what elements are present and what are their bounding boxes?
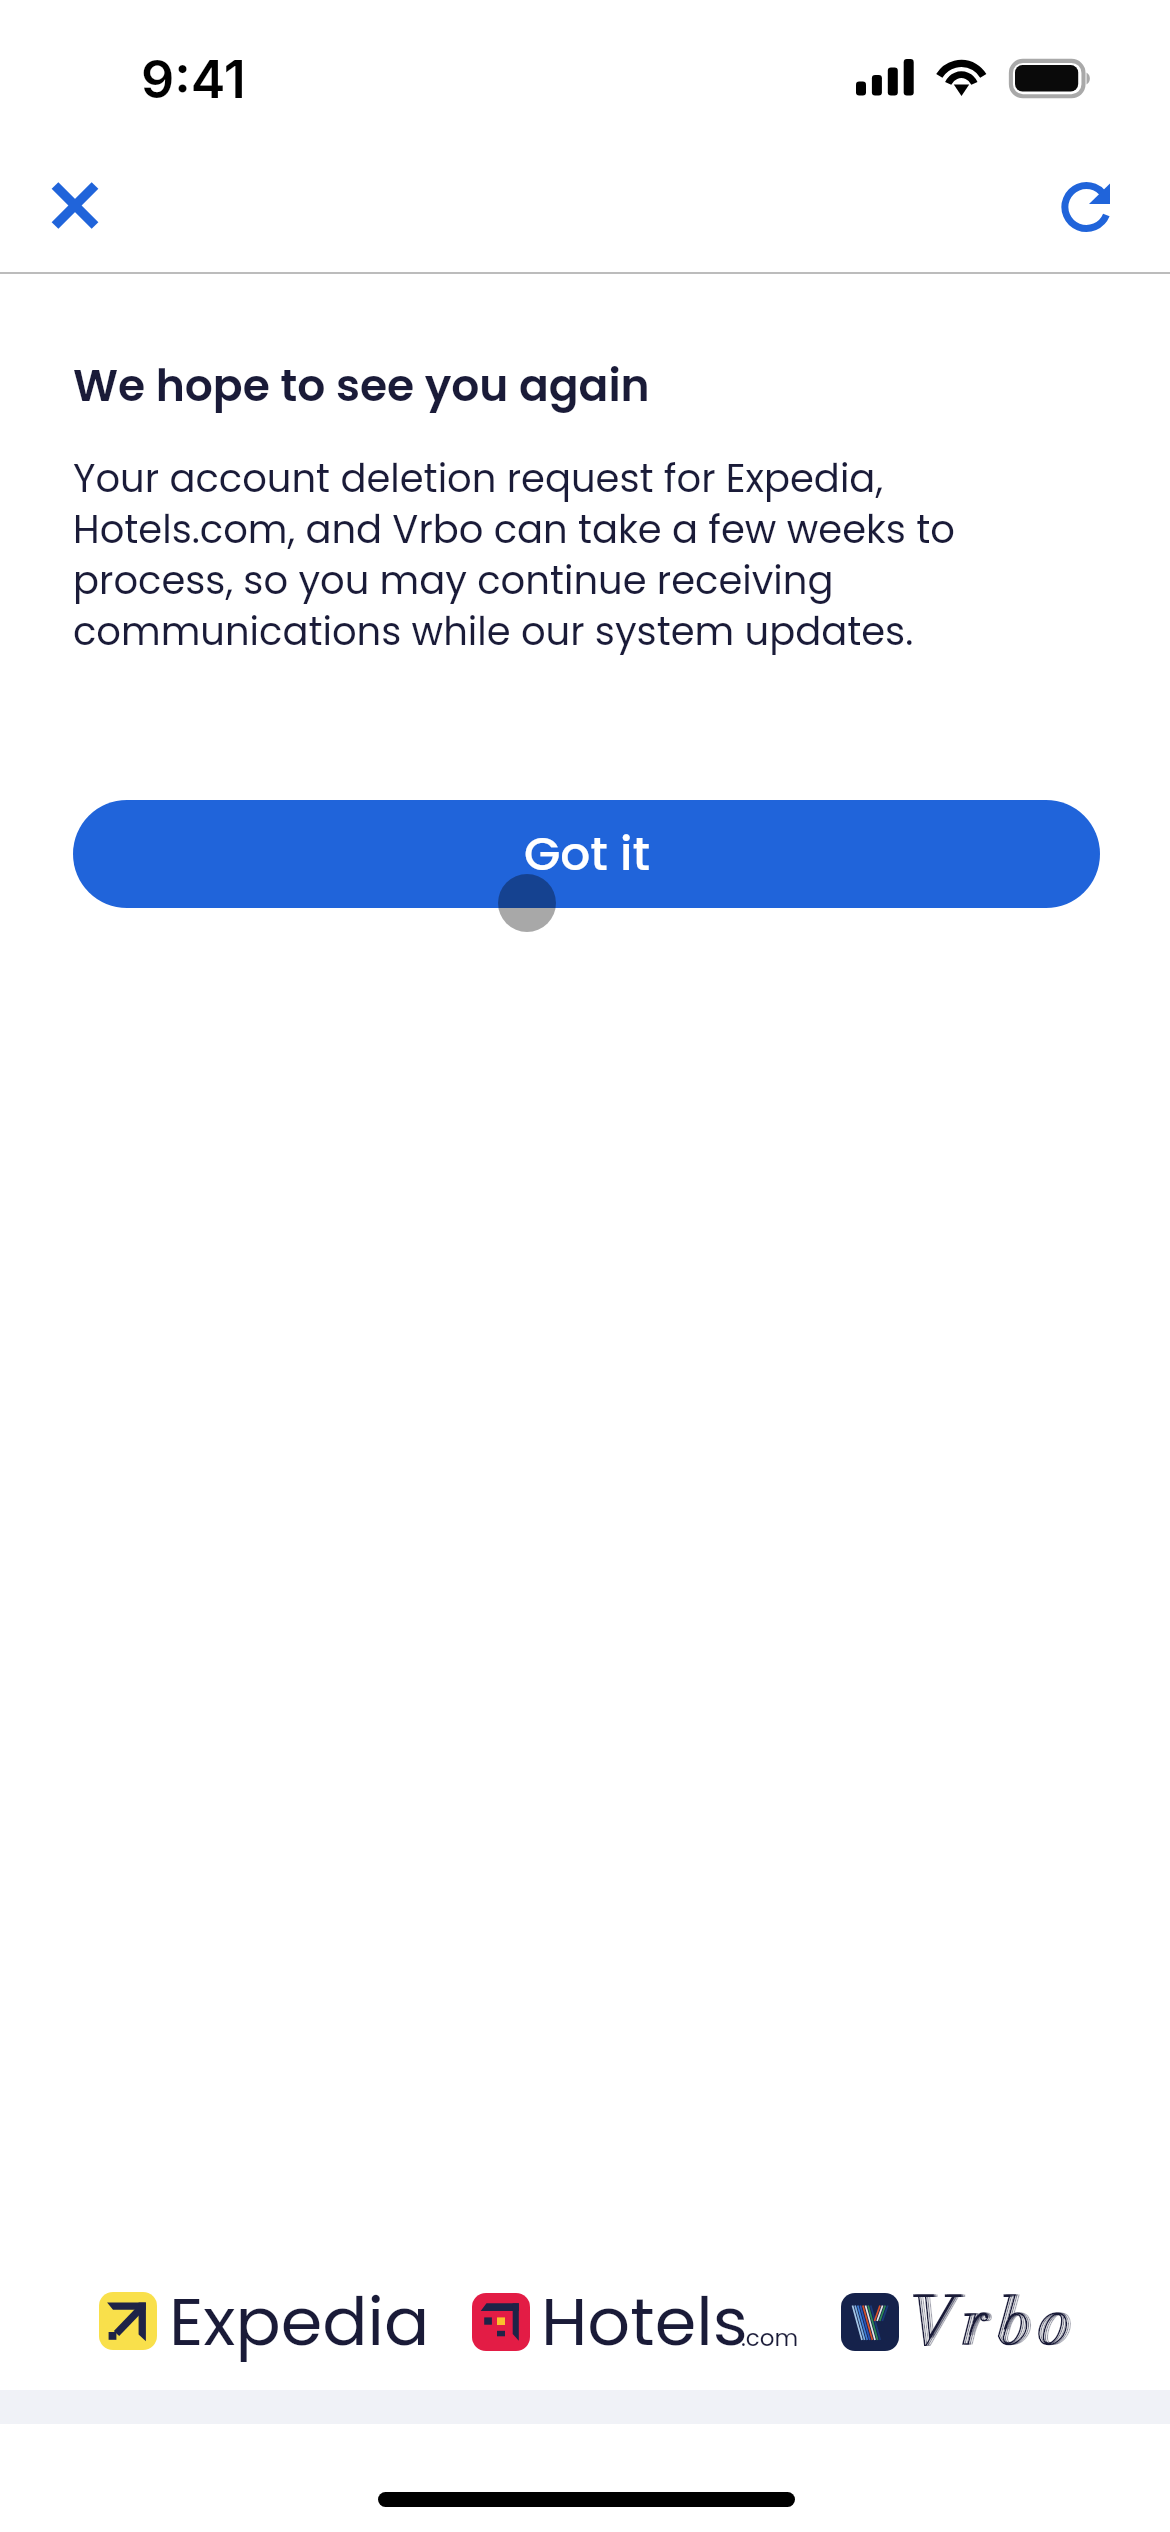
staticText: Got it bbox=[524, 821, 650, 887]
button[interactable]: Close bbox=[40, 170, 110, 240]
staticText: Vrbo bbox=[906, 2270, 1077, 2371]
button[interactable]: Refresh bbox=[1052, 172, 1122, 242]
staticText: 9:41 bbox=[141, 48, 246, 111]
staticText: Expedia bbox=[169, 2275, 430, 2369]
staticText: Vrbo bbox=[910, 2270, 1081, 2371]
button[interactable]: Got it bbox=[73, 800, 1100, 908]
staticText: Hotels bbox=[541, 2275, 748, 2369]
staticText: Your account deletion request for Expedi… bbox=[73, 452, 1083, 659]
staticText: We hope to see you again bbox=[73, 355, 650, 417]
staticText: .com bbox=[741, 2322, 799, 2354]
staticText: Vrbo bbox=[908, 2270, 1079, 2371]
